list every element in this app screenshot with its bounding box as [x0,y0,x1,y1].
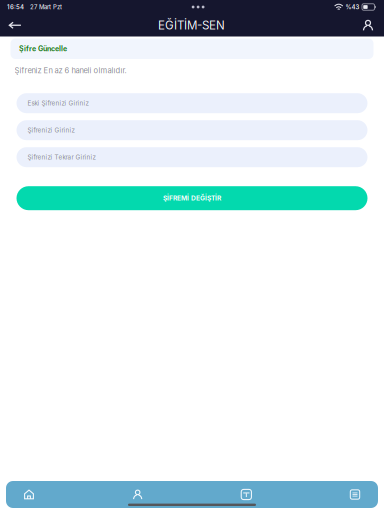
button[interactable]: Profile [122,481,154,508]
staticText: Şifre Güncelle [19,44,67,53]
staticText: Şifrenizi Giriniz [27,126,74,134]
button[interactable]: Home [13,481,45,508]
button[interactable]: Back [2,14,28,36]
button[interactable]: News [339,481,371,508]
button[interactable]: Eski Şifrenizi Giriniz [16,93,367,113]
staticText: Şifrenizi Tekrar Giriniz [27,153,95,161]
button[interactable]: Profile [355,14,381,36]
button[interactable]: Şifrenizi Giriniz [16,120,367,140]
staticText: Şifreniz En az 6 haneli olmalıdır. [14,66,126,75]
staticText: Eski Şifrenizi Giriniz [27,99,88,107]
staticText: %43 [346,3,360,11]
button[interactable]: Services [230,481,262,508]
button[interactable]: Şifrenizi Tekrar Giriniz [16,147,367,167]
staticText: 27 Mart Pzt [24,3,62,11]
staticText: 16:54 [7,3,24,11]
staticText: ŞİFREMİ DEĞİŞTİR [163,194,221,202]
button[interactable]: ŞİFREMİ DEĞİŞTİR [16,186,367,210]
staticText: EĞİTİM-SEN [158,18,225,32]
